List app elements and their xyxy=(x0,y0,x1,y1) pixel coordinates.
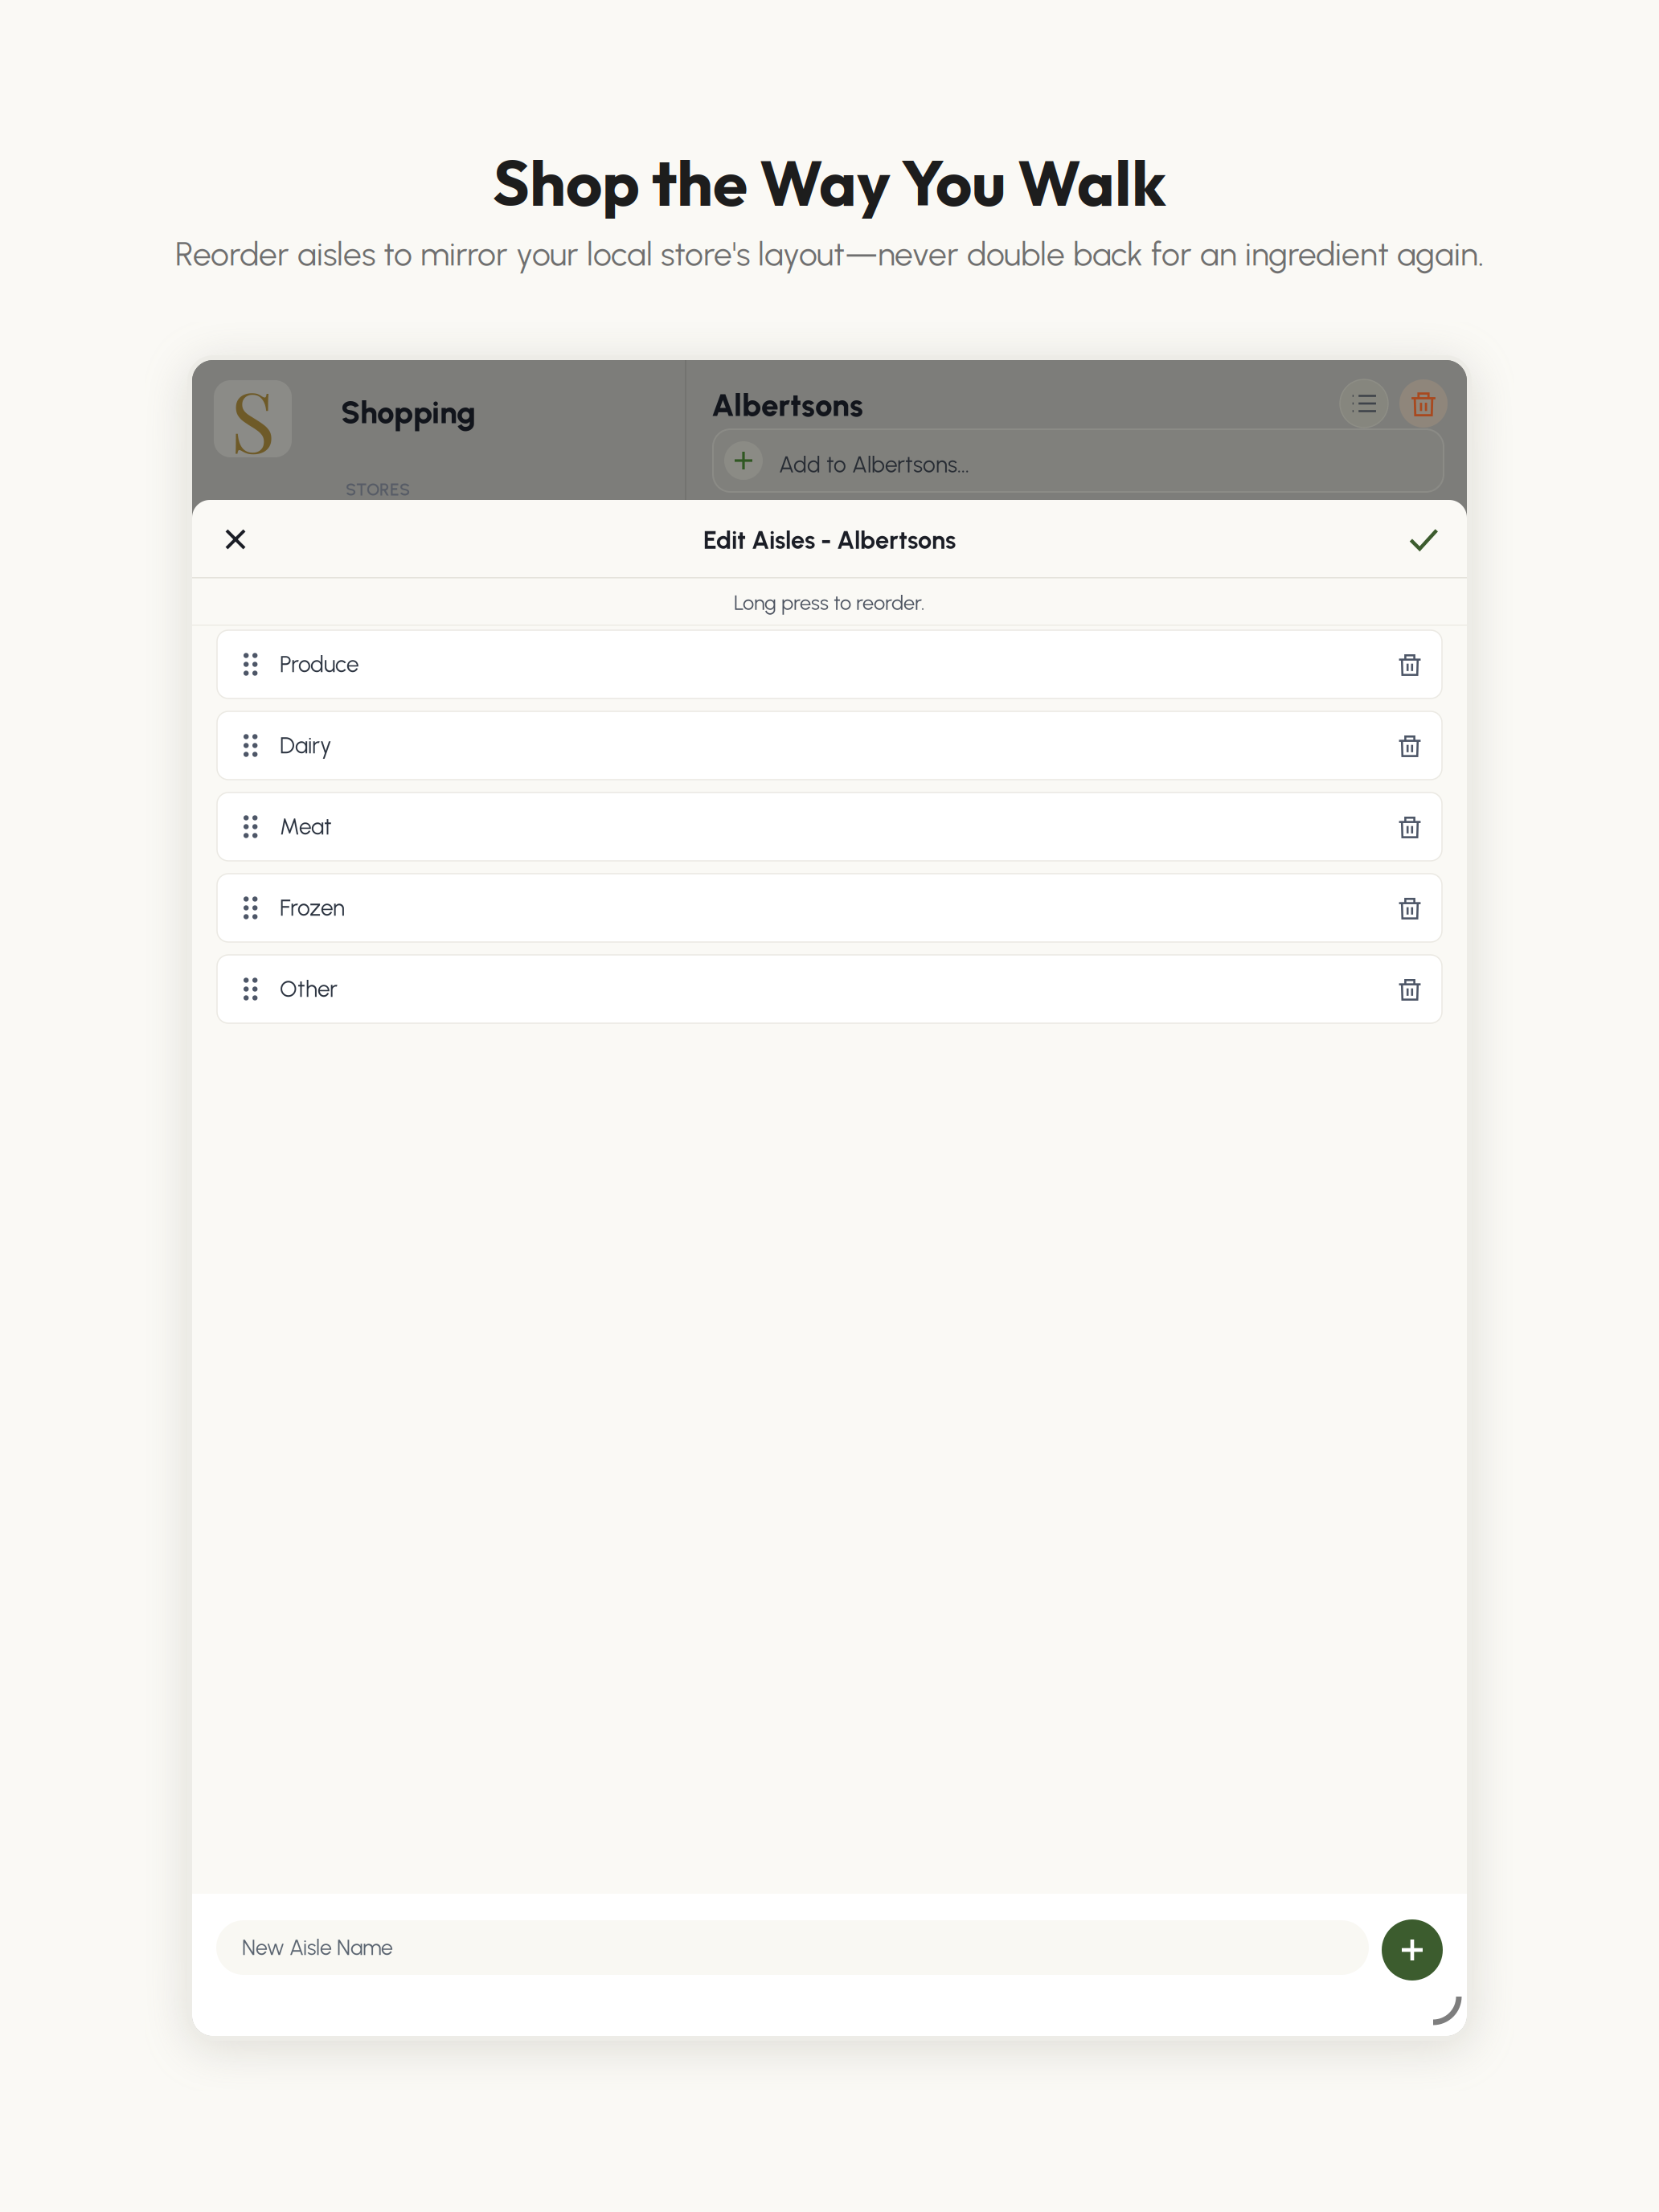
staticText: New Aisle Name xyxy=(242,1935,393,1960)
button[interactable]: Meat xyxy=(217,793,1442,861)
button[interactable]: Other xyxy=(217,955,1442,1023)
staticText: Shopping xyxy=(341,394,476,431)
staticText: Shop the Way You Walk xyxy=(493,143,1166,222)
button[interactable]: Frozen xyxy=(217,874,1442,942)
staticText: Other xyxy=(280,976,338,1003)
staticText: Meat xyxy=(280,813,332,840)
staticText: S xyxy=(230,363,275,474)
staticText: Add to Albertsons... xyxy=(779,451,969,478)
staticText: Edit Aisles - Albertsons xyxy=(703,525,956,555)
button[interactable]: Close xyxy=(206,510,265,569)
staticText: Long press to reorder. xyxy=(734,591,925,615)
button[interactable]: Add aisle xyxy=(1382,1919,1443,1981)
staticText: Reorder aisles to mirror your local stor… xyxy=(175,234,1484,274)
staticText: Frozen xyxy=(280,894,345,921)
staticText: Dairy xyxy=(280,732,331,759)
staticText: Albertsons xyxy=(711,386,863,424)
staticText: STORES xyxy=(346,479,410,500)
button[interactable]: Done xyxy=(1394,510,1453,570)
staticText: Produce xyxy=(280,651,359,678)
button[interactable]: Dairy xyxy=(217,711,1442,780)
button[interactable]: Produce xyxy=(217,630,1442,698)
